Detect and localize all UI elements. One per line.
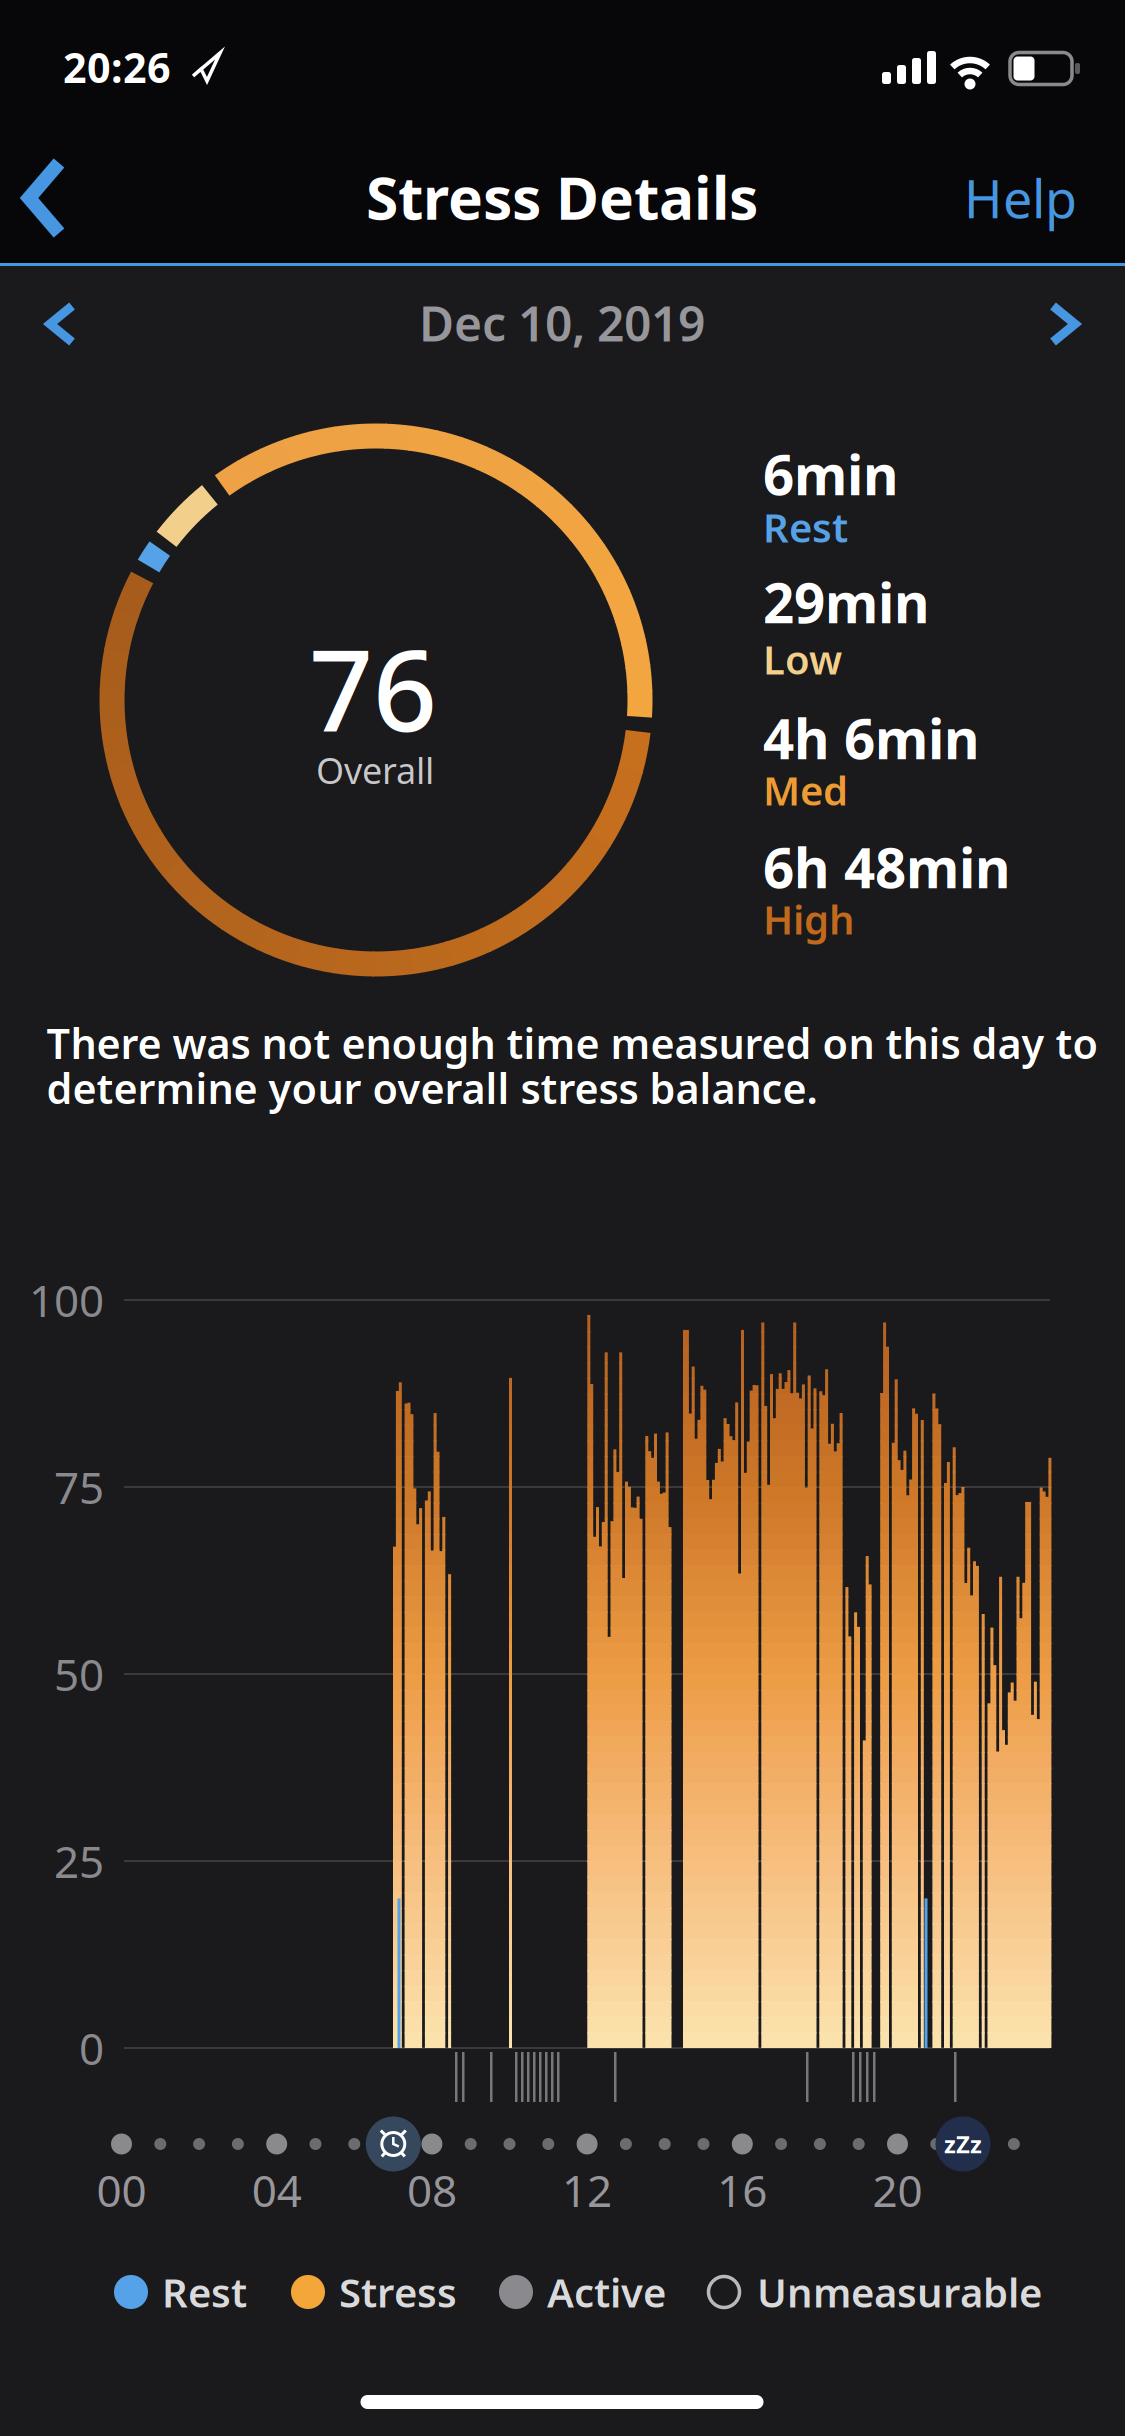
staticText: 75 — [54, 1458, 104, 1516]
staticText: 08 — [407, 2161, 457, 2219]
staticText: Rest — [162, 2265, 247, 2318]
staticText: 29min — [763, 566, 930, 638]
staticText: 20 — [872, 2161, 922, 2219]
staticText: Low — [763, 632, 842, 685]
staticText: 16 — [717, 2161, 767, 2219]
button[interactable]: Back — [22, 150, 78, 246]
staticText: 00 — [96, 2161, 146, 2219]
staticText: 6min — [763, 438, 899, 510]
staticText: High — [763, 892, 855, 945]
staticText: There was not enough time measured on th… — [46, 1016, 1098, 1070]
staticText: 50 — [54, 1645, 104, 1703]
staticText: 6h 48min — [763, 831, 1011, 903]
staticText: 25 — [54, 1832, 104, 1890]
staticText: 04 — [252, 2161, 302, 2219]
staticText: Med — [763, 763, 848, 816]
staticText: Rest — [763, 500, 848, 553]
staticText: Overall — [316, 746, 434, 794]
button[interactable]: Help — [857, 163, 1077, 233]
button[interactable]: Next day — [1045, 300, 1081, 348]
staticText: Dec 10, 2019 — [419, 291, 705, 355]
staticText: determine your overall stress balance. — [46, 1061, 817, 1115]
staticText: Help — [964, 163, 1077, 233]
staticText: zZz — [944, 2128, 982, 2160]
staticText: 0 — [79, 2019, 104, 2077]
staticText: 20:26 — [63, 40, 171, 94]
staticText: Active — [547, 2265, 666, 2318]
staticText: 76 — [309, 614, 437, 762]
staticText: 4h 6min — [763, 702, 980, 774]
staticText: Stress Details — [366, 158, 758, 236]
staticText: 12 — [562, 2161, 612, 2219]
button[interactable]: Previous day — [44, 300, 80, 348]
staticText: Stress — [339, 2265, 457, 2318]
staticText: Unmeasurable — [757, 2265, 1042, 2318]
staticText: 100 — [29, 1271, 104, 1329]
